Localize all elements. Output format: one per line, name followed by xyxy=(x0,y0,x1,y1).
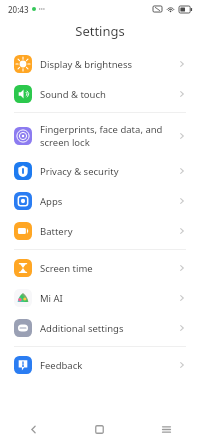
staticText: Additional settings xyxy=(40,322,178,335)
staticText: Feedback xyxy=(40,359,178,372)
staticText: Apps xyxy=(40,195,178,208)
staticText: Battery xyxy=(40,225,178,238)
staticText: Fingerprints, face data, and screen lock xyxy=(40,123,178,149)
button[interactable]: Additional settings xyxy=(0,313,200,343)
staticText: Privacy & security xyxy=(40,165,178,178)
button[interactable]: Display & brightness xyxy=(0,49,200,79)
button[interactable]: Feedback xyxy=(0,350,200,380)
button[interactable]: Battery xyxy=(0,216,200,246)
button[interactable]: Screen time xyxy=(0,253,200,283)
button[interactable]: Privacy & security xyxy=(0,156,200,186)
staticText: Sound & touch xyxy=(40,88,178,101)
staticText: Settings xyxy=(75,22,125,40)
button[interactable]: Fingerprints, face data, and screen lock xyxy=(0,116,200,156)
staticText: Mi AI xyxy=(40,292,178,305)
button[interactable]: Mi AI xyxy=(0,283,200,313)
staticText: 20:43 xyxy=(8,4,29,15)
button[interactable]: Sound & touch xyxy=(0,79,200,109)
staticText: Display & brightness xyxy=(40,58,178,71)
button[interactable]: Back xyxy=(0,414,66,444)
button[interactable]: Recent apps xyxy=(133,414,200,444)
button[interactable]: Home xyxy=(66,414,133,444)
button[interactable]: Apps xyxy=(0,186,200,216)
staticText: Screen time xyxy=(40,262,178,275)
